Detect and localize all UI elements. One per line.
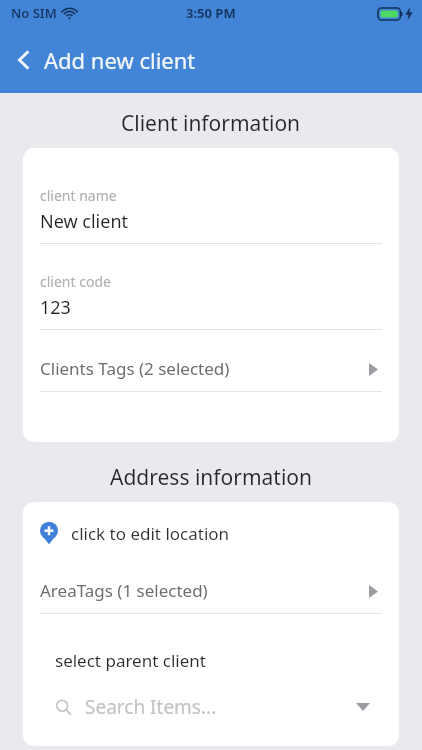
staticText: No SIM (11, 4, 57, 22)
button[interactable]: Search Items... (23, 694, 399, 720)
staticText: AreaTags (1 selected) (40, 579, 208, 602)
staticText: click to edit location (71, 522, 230, 545)
other: Back (14, 50, 34, 70)
staticText: client name (40, 186, 117, 205)
button[interactable]: Clients Tags (2 selected) (23, 357, 399, 392)
other: Open (364, 360, 382, 378)
staticText: 123 (40, 295, 71, 320)
staticText: Add new client (44, 45, 196, 75)
staticText: 3:50 PM (186, 4, 236, 22)
staticText: Search Items... (85, 694, 217, 720)
other: Expand (353, 697, 373, 717)
other: Open (364, 582, 382, 600)
staticText: client code (40, 272, 111, 291)
staticText: Address information (110, 463, 313, 492)
staticText: select parent client (55, 649, 206, 672)
button[interactable]: Back (8, 37, 202, 83)
button[interactable]: Edit location (23, 516, 399, 550)
staticText: New client (40, 209, 129, 234)
button[interactable]: AreaTags (1 selected) (23, 579, 399, 614)
staticText: Clients Tags (2 selected) (40, 357, 230, 380)
other: Edit location (40, 521, 58, 545)
staticText: Client information (121, 109, 301, 138)
